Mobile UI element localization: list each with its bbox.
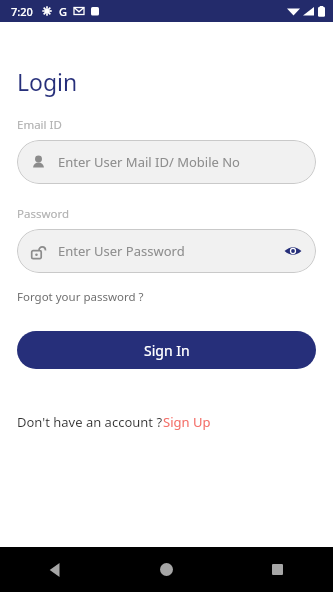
staticText: Forgot your password ?: [17, 289, 144, 305]
staticText: G: [59, 4, 67, 19]
button[interactable]: Show password: [283, 241, 303, 261]
button[interactable]: Home: [111, 547, 222, 592]
staticText: Sign In: [144, 341, 190, 360]
button[interactable]: Enter User Mail ID/ Mobile No: [17, 140, 316, 184]
staticText: Don't have an account ?: [17, 413, 163, 431]
button[interactable]: Back: [0, 547, 111, 592]
button[interactable]: Forgot your password ?: [17, 287, 144, 307]
button[interactable]: Sign Up: [163, 413, 211, 431]
staticText: Login: [17, 66, 78, 97]
staticText: Enter User Mail ID/ Mobile No: [58, 153, 240, 171]
staticText: Enter User Password: [58, 242, 185, 260]
staticText: Email ID: [17, 117, 62, 133]
button[interactable]: Enter User Password: [17, 229, 316, 273]
staticText: Sign Up: [163, 413, 211, 431]
button[interactable]: Recent apps: [222, 547, 333, 592]
staticText: Password: [17, 206, 70, 222]
staticText: 7:20: [11, 4, 33, 19]
button[interactable]: Sign In: [17, 331, 316, 369]
